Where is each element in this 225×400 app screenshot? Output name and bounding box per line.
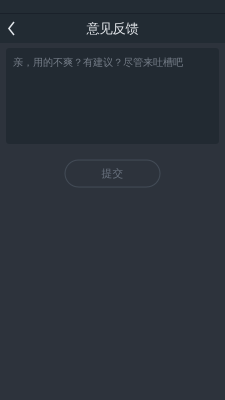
staticText: 意见反馈 — [86, 20, 138, 37]
button[interactable]: Back — [8, 14, 40, 43]
button[interactable]: 提交 — [65, 160, 160, 187]
staticText: 提交 — [101, 167, 123, 180]
staticText: 亲，用的不爽？有建议？尽管来吐槽吧 — [13, 56, 183, 69]
